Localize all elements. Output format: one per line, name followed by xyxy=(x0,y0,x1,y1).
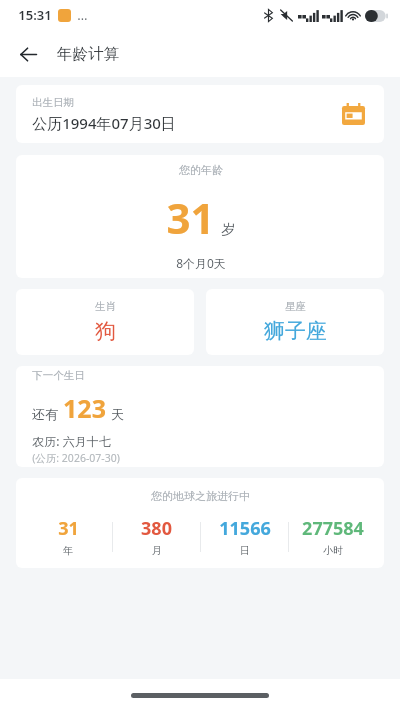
staticText: 11566 xyxy=(219,516,271,541)
staticText: 狮子座 xyxy=(264,318,327,344)
staticText: 您的地球之旅进行中 xyxy=(151,489,250,503)
button[interactable]: Back xyxy=(8,34,48,74)
staticText: 岁 xyxy=(221,221,235,239)
button[interactable]: 您的年龄 xyxy=(16,155,384,278)
button[interactable]: 星座 xyxy=(206,289,384,355)
staticText: 农历: 六月十七 xyxy=(32,433,111,449)
staticText: (公历: 2026-07-30) xyxy=(32,451,120,465)
button[interactable]: 您的地球之旅进行中 xyxy=(16,478,384,568)
button[interactable]: 生肖 xyxy=(16,289,194,355)
staticText: 日 xyxy=(240,544,250,557)
staticText: 还有 xyxy=(32,406,58,422)
staticText: 公历1994年07月30日 xyxy=(32,113,176,133)
staticText: 年 xyxy=(63,544,73,557)
staticText: … xyxy=(77,6,88,24)
button[interactable]: 11566 xyxy=(201,516,288,557)
button[interactable]: 31 xyxy=(24,516,112,557)
staticText: 狗 xyxy=(95,318,116,344)
button[interactable]: 下一个生日 xyxy=(16,366,384,467)
staticText: 123 xyxy=(63,391,106,425)
button[interactable]: 出生日期 xyxy=(16,85,384,143)
staticText: 小时 xyxy=(323,544,343,557)
staticText: 31 xyxy=(58,516,79,541)
staticText: 月 xyxy=(152,544,162,557)
staticText: 31 xyxy=(166,189,215,246)
staticText: 星座 xyxy=(285,300,306,313)
button[interactable]: 380 xyxy=(113,516,200,557)
staticText: 8个月0天 xyxy=(176,255,226,271)
staticText: 年龄计算 xyxy=(57,44,119,64)
staticText: 出生日期 xyxy=(32,96,74,109)
button[interactable]: Pick date xyxy=(338,99,368,129)
staticText: 天 xyxy=(111,406,124,422)
staticText: 380 xyxy=(141,516,172,541)
staticText: 15:31 xyxy=(18,6,52,24)
staticText: 下一个生日 xyxy=(32,369,85,382)
staticText: 生肖 xyxy=(95,300,116,313)
staticText: 您的年龄 xyxy=(179,163,223,177)
button[interactable]: 277584 xyxy=(289,516,376,557)
staticText: 277584 xyxy=(302,516,364,541)
